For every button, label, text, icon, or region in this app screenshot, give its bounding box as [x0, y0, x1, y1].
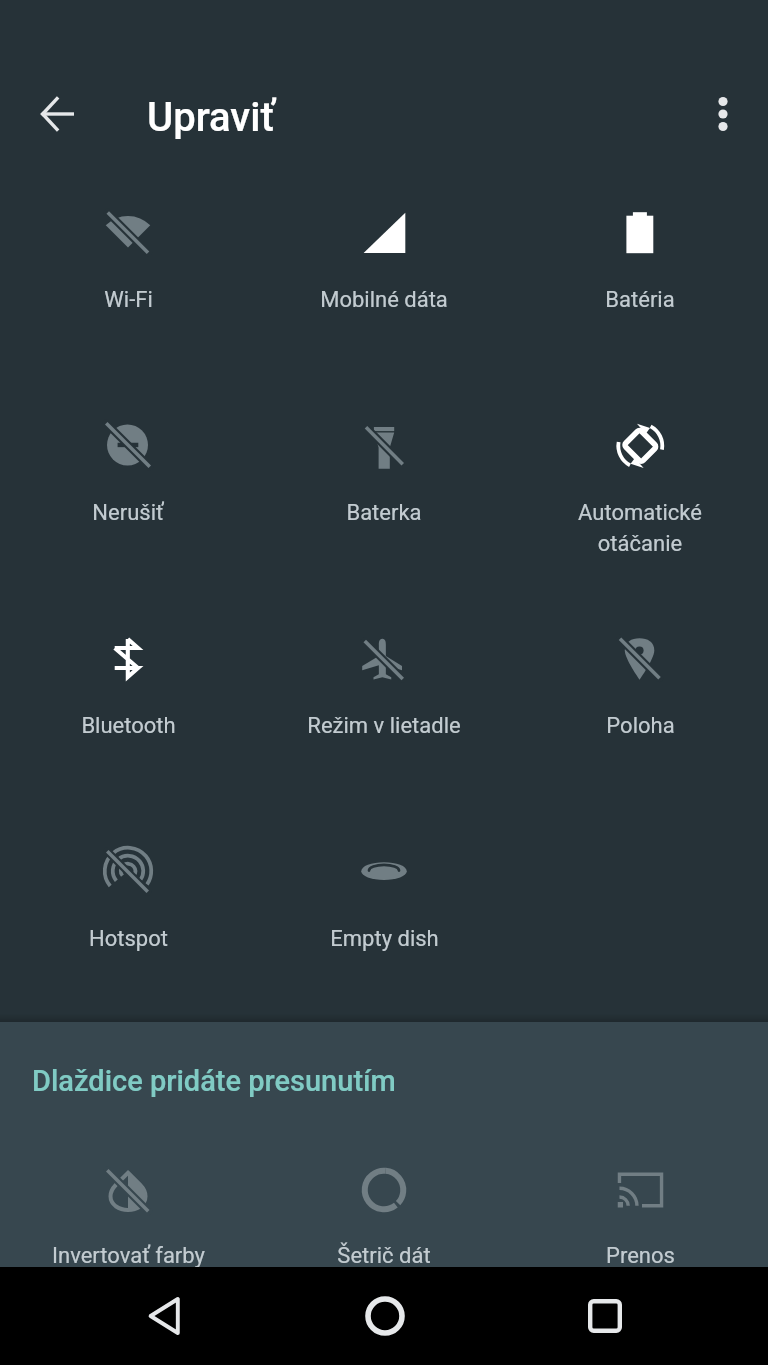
button[interactable]: Back — [125, 1276, 205, 1356]
button[interactable]: Wi-Fi — [0, 173, 256, 373]
button[interactable]: Empty dish — [256, 812, 512, 1012]
button[interactable]: Režim v lietadle — [256, 599, 512, 799]
button[interactable]: Šetrič dát — [256, 1165, 512, 1310]
button[interactable]: Invertovať farby — [0, 1165, 256, 1310]
button[interactable]: Home — [345, 1276, 425, 1356]
staticText: Nerušiť — [92, 500, 164, 526]
staticText: Prenos — [606, 1243, 675, 1269]
staticText: Baterka — [346, 500, 422, 526]
button[interactable]: Baterka — [256, 386, 512, 586]
button[interactable]: Poloha — [512, 599, 768, 799]
staticText: Šetrič dát — [337, 1243, 431, 1269]
button[interactable]: Hotspot — [0, 812, 256, 1012]
staticText: Mobilné dáta — [320, 287, 448, 313]
button[interactable]: Recent apps — [565, 1276, 645, 1356]
button[interactable]: Prenos — [512, 1165, 768, 1310]
staticText: Hotspot — [89, 926, 168, 952]
staticText: Bluetooth — [81, 713, 176, 739]
button[interactable]: Automatické otáčanie — [512, 386, 768, 586]
staticText: Automatické otáčanie — [578, 500, 702, 556]
staticText: Upraviť — [147, 94, 275, 141]
button[interactable]: Nerušiť — [0, 386, 256, 586]
staticText: Poloha — [606, 713, 675, 739]
staticText: Batéria — [605, 287, 675, 313]
staticText: Invertovať farby — [52, 1243, 205, 1269]
button[interactable]: More options — [695, 86, 751, 142]
staticText: Režim v lietadle — [307, 713, 461, 739]
button[interactable]: Batéria — [512, 173, 768, 373]
button[interactable]: Bluetooth — [0, 599, 256, 799]
button[interactable]: Mobilné dáta — [256, 173, 512, 373]
button[interactable]: Back — [30, 86, 86, 142]
staticText: Wi-Fi — [104, 287, 153, 313]
staticText: Empty dish — [330, 926, 439, 952]
staticText: Dlaždice pridáte presunutím — [32, 1064, 396, 1098]
